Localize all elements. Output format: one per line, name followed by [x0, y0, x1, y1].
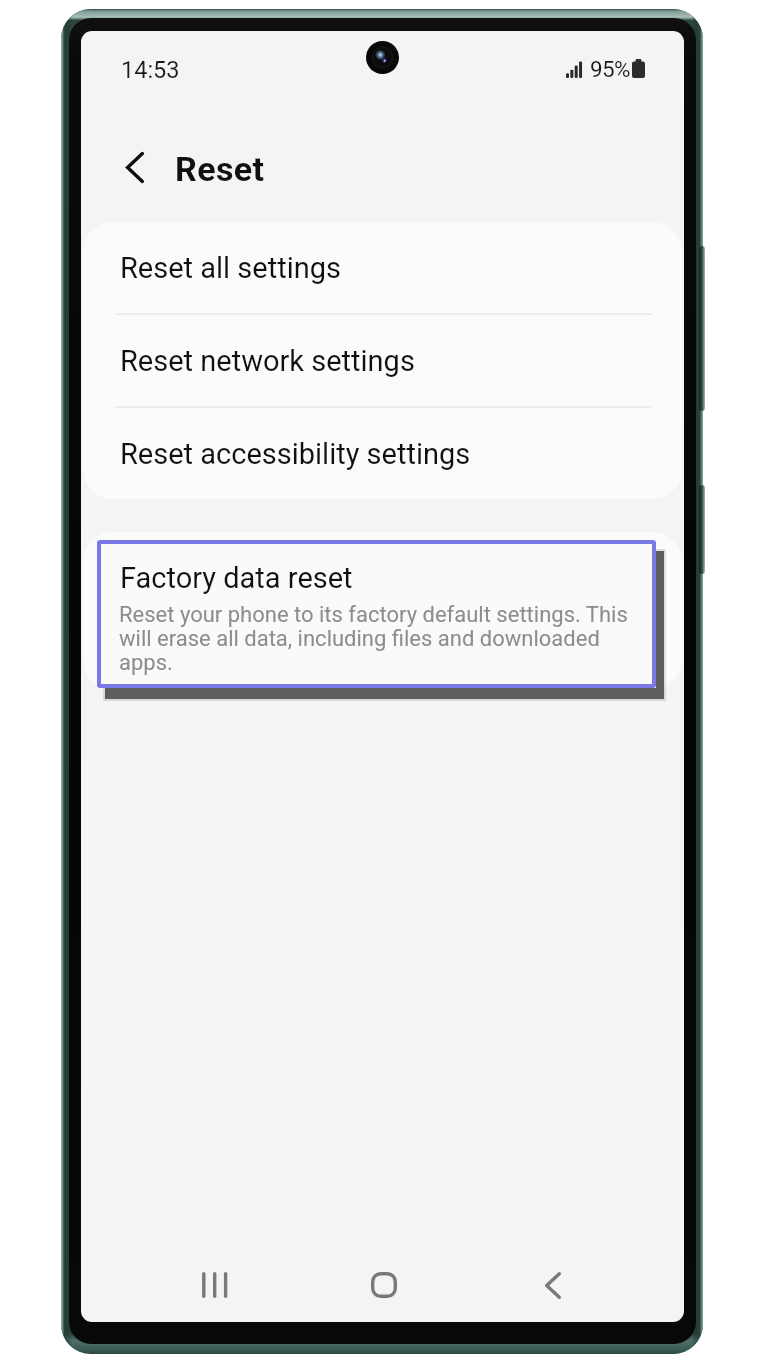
staticText: Reset network settings: [120, 344, 415, 378]
button[interactable]: Reset accessibility settings: [83, 408, 682, 499]
button[interactable]: Back: [518, 1250, 588, 1320]
button[interactable]: Reset all settings: [83, 222, 682, 313]
button[interactable]: Home: [349, 1250, 419, 1320]
staticText: Reset all settings: [120, 251, 341, 285]
staticText: 95%: [590, 56, 630, 82]
staticText: Reset: [175, 149, 265, 189]
button[interactable]: Recent apps: [179, 1250, 249, 1320]
staticText: Reset accessibility settings: [120, 437, 471, 471]
button[interactable]: Reset network settings: [83, 315, 682, 406]
staticText: 14:53: [121, 56, 180, 84]
staticText: Reset your phone to its factory default …: [119, 602, 678, 675]
button[interactable]: Factory data reset: [97, 540, 656, 688]
button[interactable]: Back: [102, 134, 168, 200]
staticText: Factory data reset: [120, 561, 353, 595]
